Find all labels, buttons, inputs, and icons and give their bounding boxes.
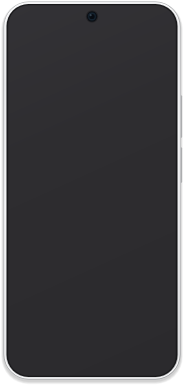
- button[interactable]: Phone device preview, screen off: [0, 0, 184, 389]
